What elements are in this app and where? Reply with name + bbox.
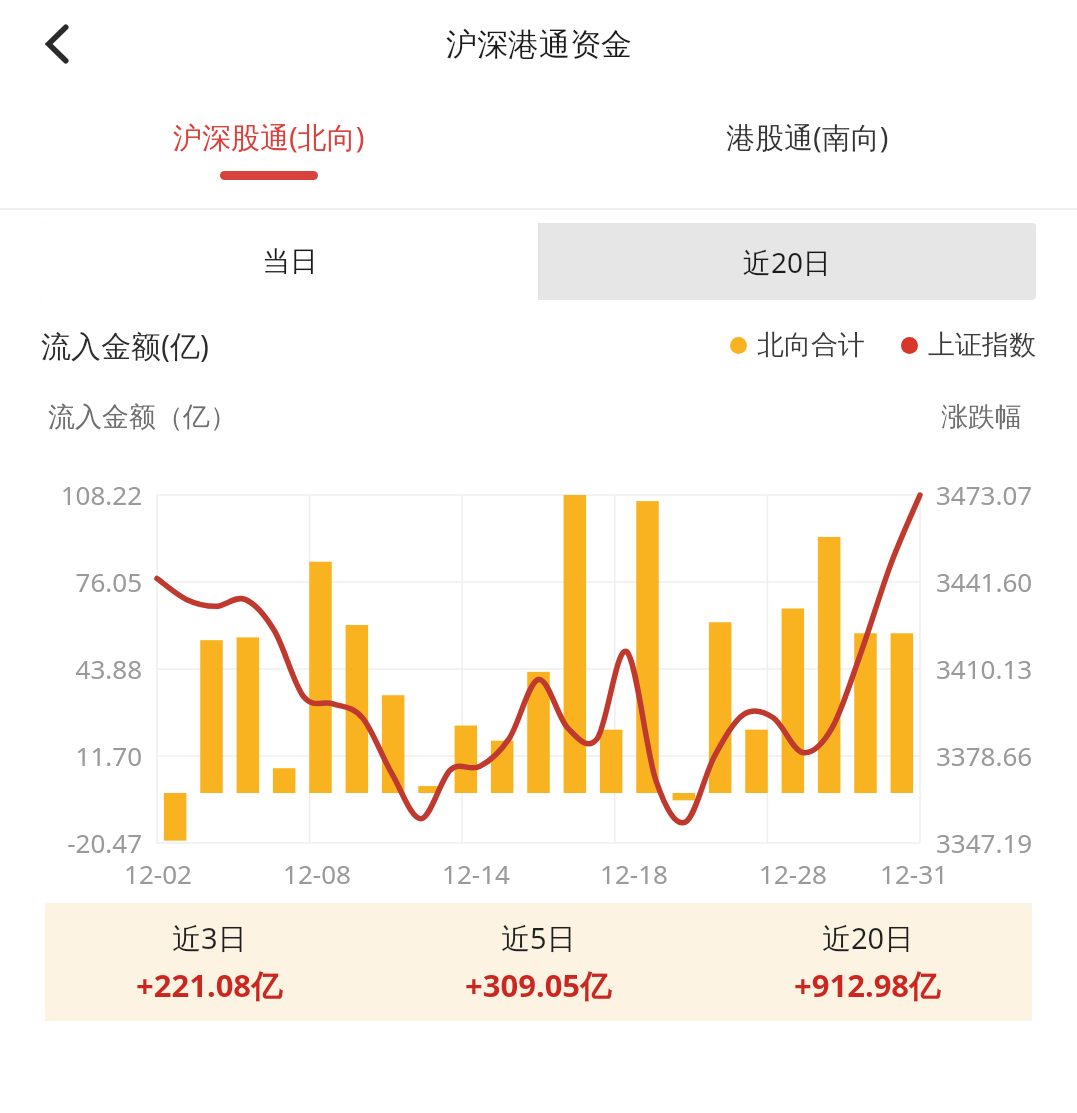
staticText: 沪深港通资金 [446,25,632,64]
staticText: 3473.07 [936,477,1033,512]
staticText: 近20日 [743,243,832,281]
staticText: +912.98亿 [794,964,941,1006]
staticText: +309.05亿 [465,964,612,1006]
staticText: 上证指数 [928,328,1036,362]
staticText: +221.08亿 [136,964,283,1006]
staticText: 流入金额(亿) [41,325,209,366]
staticText: 沪深股通(北向) [173,117,365,157]
button[interactable]: 近3日 [45,903,374,1021]
staticText: 3410.13 [936,651,1033,686]
staticText: 港股通(南向) [726,117,889,157]
staticText: 北向合计 [757,328,865,362]
staticText: 流入金额（亿） [48,400,237,434]
staticText: 近20日 [822,918,914,958]
staticText: 12-08 [277,856,357,891]
button[interactable]: 当日 [41,223,538,300]
button[interactable]: Back [26,14,86,74]
button[interactable]: 港股通(南向) [538,88,1077,208]
staticText: 当日 [262,244,318,279]
button[interactable]: 沪深股通(北向) [0,88,538,208]
button[interactable]: 近20日 [539,223,1036,300]
button[interactable]: 近20日 [703,903,1032,1021]
staticText: 12-31 [874,856,954,891]
staticText: 12-18 [594,856,674,891]
staticText: 3347.19 [936,825,1033,860]
staticText: 11.70 [42,738,142,773]
staticText: 76.05 [42,564,142,599]
staticText: 3378.66 [936,738,1033,773]
staticText: 近5日 [501,918,576,958]
staticText: 43.88 [42,651,142,686]
staticText: 3441.60 [936,564,1033,599]
button[interactable]: 近5日 [374,903,703,1021]
staticText: 涨跌幅 [941,400,1022,434]
staticText: 12-28 [753,856,833,891]
staticText: -20.47 [42,825,142,860]
staticText: 12-02 [118,856,198,891]
staticText: 近3日 [172,918,247,958]
staticText: 108.22 [42,477,142,512]
staticText: 12-14 [436,856,516,891]
